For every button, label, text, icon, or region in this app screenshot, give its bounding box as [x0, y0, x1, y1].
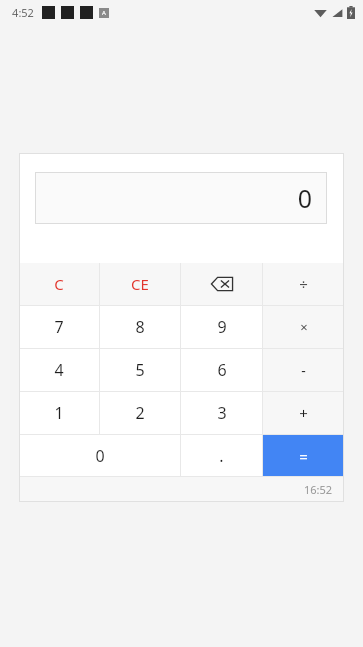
button[interactable]: CE: [100, 263, 180, 305]
staticText: CE: [131, 274, 149, 294]
staticText: ×: [300, 318, 308, 336]
button[interactable]: 1: [19, 392, 99, 434]
staticText: 1: [54, 402, 64, 424]
button[interactable]: ÷: [263, 263, 344, 305]
staticText: 4:52: [12, 5, 34, 20]
button[interactable]: ×: [263, 306, 344, 348]
button[interactable]: 9: [181, 306, 262, 348]
staticText: 0: [95, 445, 105, 467]
button[interactable]: 0: [19, 435, 180, 476]
button[interactable]: +: [263, 392, 344, 434]
staticText: A: [102, 9, 106, 17]
button[interactable]: =: [263, 435, 344, 476]
staticText: -: [301, 361, 306, 380]
button[interactable]: 6: [181, 349, 262, 391]
button[interactable]: 5: [100, 349, 180, 391]
button[interactable]: .: [181, 435, 262, 476]
staticText: ÷: [299, 274, 308, 294]
staticText: 2: [135, 402, 145, 424]
staticText: =: [299, 446, 308, 466]
button[interactable]: Backspace: [181, 263, 262, 305]
staticText: 5: [135, 359, 145, 381]
staticText: 16:52: [303, 482, 332, 497]
staticText: 6: [217, 359, 227, 381]
staticText: 8: [135, 316, 145, 338]
button[interactable]: -: [263, 349, 344, 391]
staticText: .: [219, 445, 224, 467]
button[interactable]: C: [19, 263, 99, 305]
staticText: 7: [54, 316, 64, 338]
staticText: +: [299, 403, 308, 423]
staticText: 3: [217, 402, 227, 424]
staticText: 4: [54, 359, 64, 381]
staticText: 0: [297, 181, 312, 215]
button[interactable]: 0: [35, 172, 327, 224]
button[interactable]: 7: [19, 306, 99, 348]
button[interactable]: 2: [100, 392, 180, 434]
button[interactable]: 8: [100, 306, 180, 348]
button[interactable]: 3: [181, 392, 262, 434]
staticText: C: [54, 274, 64, 294]
button[interactable]: 4: [19, 349, 99, 391]
staticText: 9: [217, 316, 227, 338]
